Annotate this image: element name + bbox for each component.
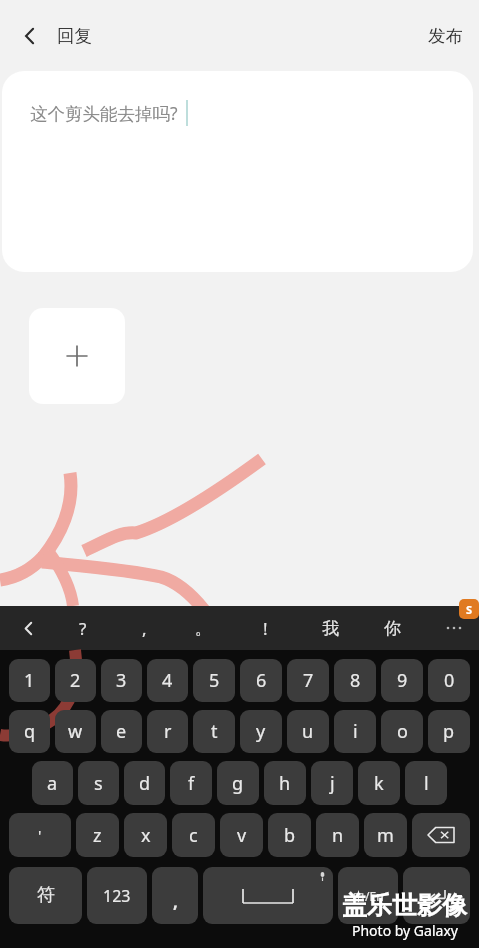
button[interactable]: 8: [334, 659, 376, 702]
button[interactable]: 7: [287, 659, 329, 702]
button[interactable]: Add attachment: [29, 308, 125, 404]
staticText: 8: [350, 668, 361, 693]
button[interactable]: v: [220, 813, 263, 857]
button[interactable]: More: [434, 608, 474, 648]
button[interactable]: p: [428, 710, 470, 753]
button[interactable]: 符: [9, 867, 82, 924]
button[interactable]: z: [76, 813, 119, 857]
button[interactable]: q: [9, 710, 50, 753]
staticText: 1: [24, 668, 35, 693]
button[interactable]: c: [172, 813, 215, 857]
button[interactable]: Back: [8, 14, 52, 58]
staticText: 7: [303, 668, 314, 693]
button[interactable]: Backspace: [412, 813, 470, 857]
staticText: y: [256, 719, 266, 744]
button[interactable]: x: [124, 813, 167, 857]
staticText: 3: [116, 668, 127, 693]
button[interactable]: a: [32, 761, 73, 805]
staticText: h: [279, 771, 291, 796]
button[interactable]: !: [243, 606, 287, 650]
button[interactable]: ,: [152, 867, 198, 924]
button[interactable]: Samsung keyboard: [459, 599, 479, 619]
button[interactable]: 5: [193, 659, 235, 702]
staticText: 你: [384, 618, 401, 639]
button[interactable]: s: [78, 761, 119, 805]
staticText: S: [466, 602, 473, 617]
button[interactable]: r: [147, 710, 188, 753]
staticText: 6: [256, 668, 267, 693]
staticText: i: [353, 719, 358, 744]
button[interactable]: 你: [370, 606, 414, 650]
staticText: d: [139, 771, 151, 796]
staticText: 123: [103, 885, 131, 907]
staticText: ': [38, 825, 42, 845]
button[interactable]: m: [364, 813, 407, 857]
staticText: m: [377, 823, 394, 848]
button[interactable]: 中/En: [338, 867, 398, 924]
staticText: c: [189, 823, 198, 848]
staticText: s: [94, 771, 103, 796]
button[interactable]: e: [101, 710, 142, 753]
staticText: 0: [444, 668, 455, 693]
button[interactable]: k: [358, 761, 400, 805]
button[interactable]: Previous: [8, 608, 48, 648]
button[interactable]: h: [264, 761, 306, 805]
button[interactable]: Enter: [403, 867, 470, 924]
staticText: 。: [195, 618, 212, 639]
button[interactable]: ,: [122, 606, 166, 650]
button[interactable]: Space: [203, 867, 333, 924]
button[interactable]: 发布: [412, 13, 479, 59]
button[interactable]: d: [124, 761, 165, 805]
button[interactable]: j: [311, 761, 353, 805]
staticText: 4: [162, 668, 173, 693]
staticText: 发布: [428, 25, 463, 47]
staticText: 2: [70, 668, 81, 693]
staticText: r: [164, 719, 172, 744]
staticText: !: [263, 617, 268, 640]
button[interactable]: 1: [9, 659, 50, 702]
button[interactable]: 0: [428, 659, 470, 702]
staticText: o: [397, 719, 408, 744]
staticText: 我: [322, 618, 339, 639]
staticText: t: [211, 719, 218, 744]
staticText: g: [232, 771, 244, 796]
button[interactable]: n: [316, 813, 359, 857]
button[interactable]: ?: [61, 606, 105, 650]
staticText: p: [443, 719, 455, 744]
staticText: 中/En: [353, 888, 384, 904]
staticText: 符: [37, 884, 55, 907]
staticText: f: [188, 771, 195, 796]
button[interactable]: f: [170, 761, 212, 805]
staticText: ,: [173, 890, 178, 913]
button[interactable]: w: [55, 710, 96, 753]
staticText: 5: [209, 668, 220, 693]
button[interactable]: t: [193, 710, 235, 753]
button[interactable]: l: [405, 761, 447, 805]
button[interactable]: 。: [181, 606, 225, 650]
staticText: 这个剪头能去掉吗?: [30, 101, 178, 125]
button[interactable]: u: [287, 710, 329, 753]
button[interactable]: 这个剪头能去掉吗?: [2, 71, 473, 272]
button[interactable]: i: [334, 710, 376, 753]
button[interactable]: g: [217, 761, 259, 805]
staticText: 回复: [57, 25, 92, 47]
staticText: b: [284, 823, 296, 848]
staticText: 9: [397, 668, 408, 693]
button[interactable]: 6: [240, 659, 282, 702]
staticText: l: [424, 771, 429, 796]
button[interactable]: 3: [101, 659, 142, 702]
button[interactable]: 我: [308, 606, 352, 650]
button[interactable]: o: [381, 710, 423, 753]
staticText: Photo by Galaxy: [352, 921, 458, 940]
button[interactable]: b: [268, 813, 311, 857]
button[interactable]: 2: [55, 659, 96, 702]
button[interactable]: y: [240, 710, 282, 753]
staticText: z: [93, 823, 102, 848]
staticText: q: [24, 719, 36, 744]
button[interactable]: 4: [147, 659, 188, 702]
staticText: k: [374, 771, 384, 796]
button[interactable]: ': [9, 813, 71, 857]
staticText: u: [302, 719, 314, 744]
button[interactable]: 9: [381, 659, 423, 702]
button[interactable]: 123: [87, 867, 147, 924]
